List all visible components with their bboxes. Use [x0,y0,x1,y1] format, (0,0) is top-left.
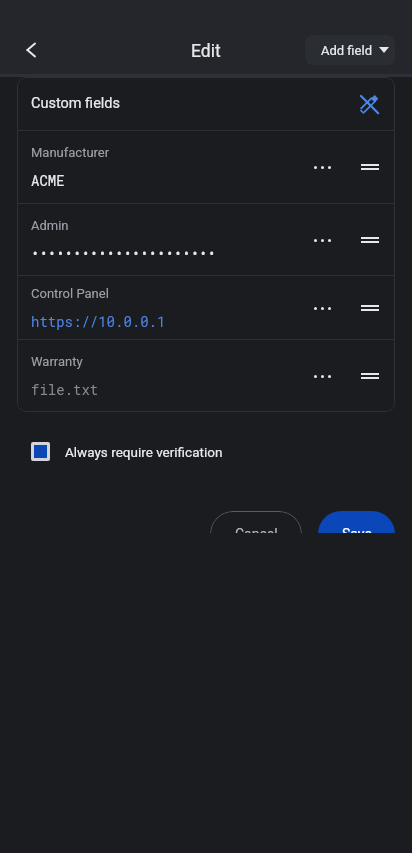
button[interactable]: Add field [305,35,395,65]
staticText: Custom fields [31,95,121,112]
staticText: Admin [31,218,69,233]
staticText: Manufacturer [31,145,110,160]
button[interactable]: Reorder [354,151,386,183]
staticText: Edit [191,41,221,62]
button[interactable]: More options [304,290,340,326]
staticText: https://10.0.0.1 [31,312,166,330]
staticText: Add field [321,43,372,58]
button[interactable]: Save [318,511,395,533]
staticText: ACME [31,171,65,189]
button[interactable]: Back [11,30,51,70]
button[interactable]: Reorder [354,224,386,256]
staticText: Control Panel [31,286,109,301]
staticText: file.txt [31,380,99,398]
button[interactable]: Stop editing [352,87,386,121]
staticText: •••••••••••••••••••••• [31,244,216,262]
staticText: Save [342,526,372,533]
staticText: Warranty [31,354,83,369]
button[interactable]: Always require verification [24,436,388,467]
staticText: Cancel [235,526,278,533]
button[interactable]: Reorder [354,360,386,392]
button[interactable]: More options [304,222,340,258]
button[interactable]: More options [304,358,340,394]
button[interactable]: Cancel [210,511,302,533]
button[interactable]: More options [304,149,340,185]
staticText: Always require verification [65,444,223,460]
button[interactable]: Reorder [354,292,386,324]
